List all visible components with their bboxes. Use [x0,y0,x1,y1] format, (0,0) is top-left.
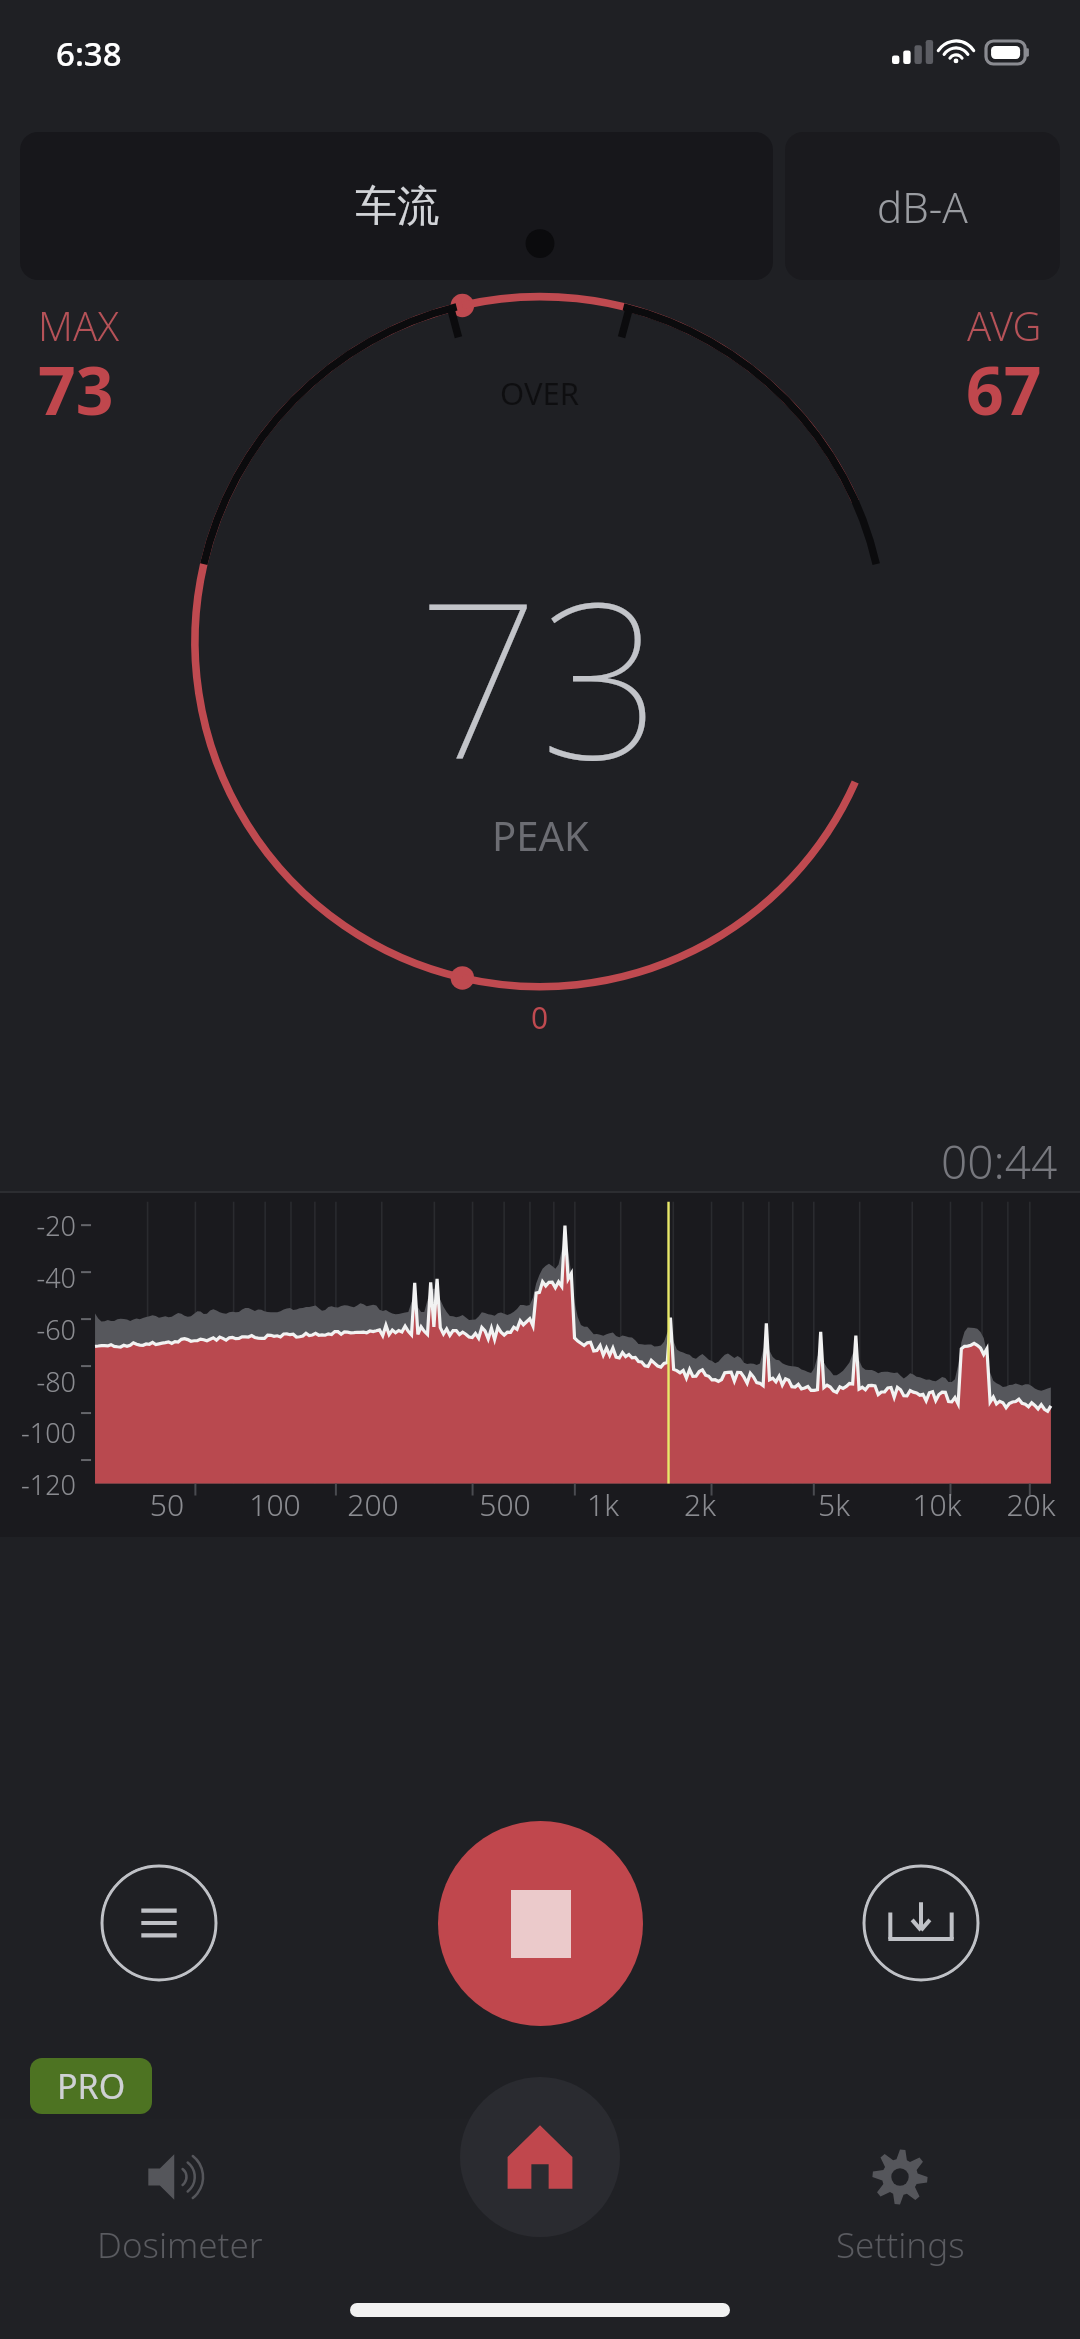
button[interactable]: dB-A [785,132,1060,280]
staticText: 100 [235,1484,315,1525]
staticText: -80 [14,1363,76,1400]
staticText: 50 [127,1484,207,1525]
button[interactable]: 车流 [20,132,773,280]
button[interactable]: Dosimeter [0,2119,360,2269]
staticText: 5k [794,1484,874,1525]
button[interactable]: Home [460,2077,620,2237]
button[interactable]: Save [862,1864,980,1982]
button[interactable]: Stop recording [438,1821,643,2026]
staticText: 200 [333,1484,413,1525]
staticText: 2k [660,1484,740,1525]
staticText: 73 [38,344,114,434]
staticText: OVER [500,372,580,414]
staticText: Dosimeter [97,2221,263,2269]
staticText: 00:44 [941,1130,1058,1192]
button[interactable]: Menu [100,1864,218,1982]
staticText: 10k [897,1484,977,1525]
staticText: dB-A [877,178,968,235]
staticText: AVG [967,298,1042,352]
staticText: Settings [836,2221,965,2269]
staticText: PEAK [492,808,589,862]
staticText: MAX [38,298,120,352]
staticText: 0 [531,997,549,1038]
button[interactable]: PRO [30,2058,152,2114]
staticText: 67 [966,344,1042,434]
staticText: 500 [465,1484,545,1525]
staticText: -120 [14,1466,76,1503]
staticText: PRO [57,2063,126,2109]
staticText: -40 [14,1259,76,1296]
staticText: -100 [14,1414,76,1451]
button[interactable]: Settings [720,2119,1080,2269]
staticText: -60 [14,1311,76,1348]
staticText: 20k [991,1484,1071,1525]
staticText: 73 [417,529,663,822]
staticText: -20 [14,1207,76,1244]
staticText: 1k [563,1484,643,1525]
staticText: 6:38 [56,31,122,76]
staticText: 车流 [355,180,439,233]
